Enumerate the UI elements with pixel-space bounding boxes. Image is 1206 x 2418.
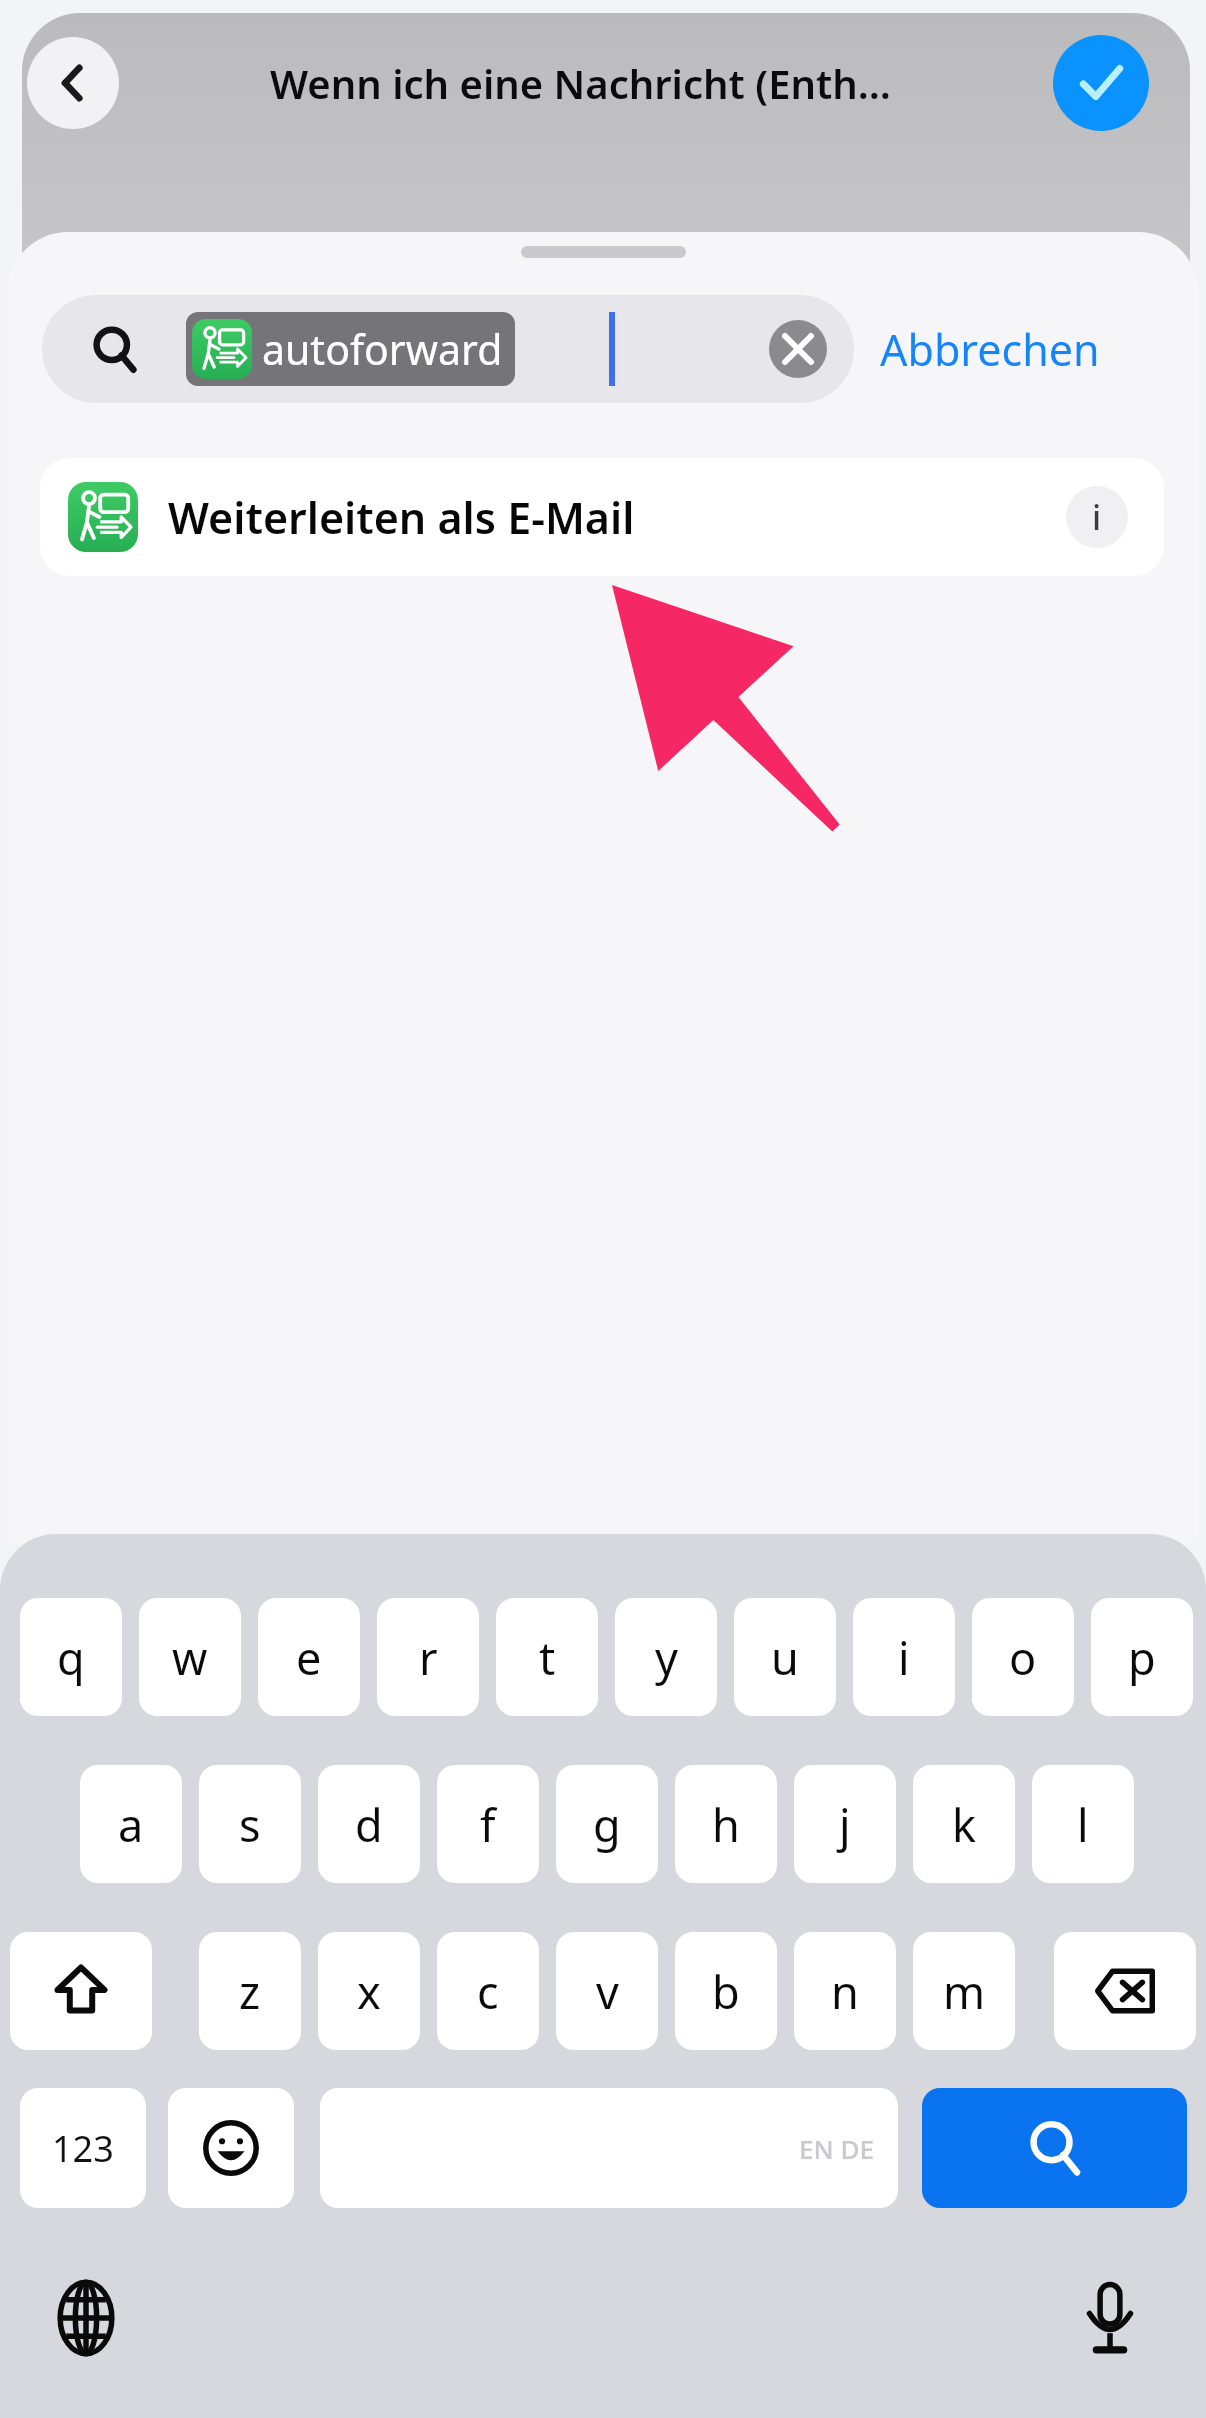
button[interactable]: Löschen <box>1054 1932 1196 2050</box>
staticText: 123 <box>52 2124 114 2173</box>
button[interactable]: k <box>913 1765 1015 1883</box>
button[interactable]: n <box>794 1932 896 2050</box>
button[interactable]: i <box>853 1598 955 1716</box>
button[interactable]: l <box>1032 1765 1134 1883</box>
staticText: p <box>1128 1627 1156 1688</box>
staticText: Abbrechen <box>880 320 1100 379</box>
button[interactable]: v <box>556 1932 658 2050</box>
staticText: f <box>480 1794 496 1855</box>
staticText: j <box>839 1794 851 1855</box>
button[interactable]: w <box>139 1598 241 1716</box>
staticText: x <box>357 1961 381 2022</box>
staticText: t <box>539 1627 556 1688</box>
button[interactable]: Zahlen <box>20 2088 146 2208</box>
button[interactable]: b <box>675 1932 777 2050</box>
button[interactable]: Leertaste <box>320 2088 898 2208</box>
button[interactable]: x <box>318 1932 420 2050</box>
staticText: k <box>952 1794 977 1855</box>
staticText: v <box>596 1961 619 2022</box>
staticText: g <box>593 1794 621 1855</box>
button[interactable]: c <box>437 1932 539 2050</box>
button[interactable]: Fertig <box>1053 35 1149 131</box>
button[interactable]: Suchen <box>922 2088 1187 2208</box>
button[interactable]: t <box>496 1598 598 1716</box>
button[interactable]: p <box>1091 1598 1193 1716</box>
staticText: i <box>898 1627 910 1688</box>
button[interactable]: Weiterleiten als E-Mail <box>40 458 1164 576</box>
staticText: y <box>655 1627 678 1688</box>
staticText: m <box>943 1961 986 2022</box>
button[interactable]: d <box>318 1765 420 1883</box>
button[interactable]: Emoji <box>168 2088 294 2208</box>
button[interactable]: y <box>615 1598 717 1716</box>
staticText: h <box>712 1794 740 1855</box>
staticText: s <box>239 1794 261 1855</box>
staticText: b <box>712 1961 740 2022</box>
staticText: l <box>1077 1794 1089 1855</box>
staticText: o <box>1009 1627 1037 1688</box>
button[interactable]: g <box>556 1765 658 1883</box>
button[interactable]: a <box>80 1765 182 1883</box>
staticText: z <box>239 1961 261 2022</box>
staticText: r <box>419 1627 438 1688</box>
staticText: u <box>771 1627 799 1688</box>
staticText: EN DE <box>799 2131 874 2166</box>
button[interactable]: Diktieren <box>1064 2272 1156 2364</box>
button[interactable]: u <box>734 1598 836 1716</box>
staticText: d <box>355 1794 383 1855</box>
button[interactable]: Löschen <box>769 320 827 378</box>
button[interactable]: r <box>377 1598 479 1716</box>
button[interactable]: s <box>199 1765 301 1883</box>
button[interactable]: autoforward <box>42 295 854 403</box>
staticText: Weiterleiten als E-Mail <box>168 488 635 547</box>
staticText: a <box>118 1794 144 1855</box>
button[interactable]: h <box>675 1765 777 1883</box>
staticText: Wenn ich eine Nachricht (Enth… <box>270 56 891 110</box>
button[interactable]: j <box>794 1765 896 1883</box>
button[interactable]: Zurück <box>27 37 119 129</box>
staticText: c <box>477 1961 499 2022</box>
button[interactable]: Sprache wechseln <box>40 2272 132 2364</box>
staticText: e <box>296 1627 322 1688</box>
button[interactable]: Abbrechen <box>880 295 1170 403</box>
button[interactable]: z <box>199 1932 301 2050</box>
button[interactable]: m <box>913 1932 1015 2050</box>
staticText: i <box>1092 494 1102 540</box>
staticText: n <box>831 1961 859 2022</box>
staticText: q <box>57 1627 85 1688</box>
staticText: autoforward <box>262 321 503 377</box>
button[interactable]: q <box>20 1598 122 1716</box>
button[interactable]: Info <box>1066 486 1128 548</box>
button[interactable]: f <box>437 1765 539 1883</box>
staticText: w <box>172 1627 208 1688</box>
button[interactable]: Umschalt <box>10 1932 152 2050</box>
button[interactable]: o <box>972 1598 1074 1716</box>
button[interactable]: e <box>258 1598 360 1716</box>
